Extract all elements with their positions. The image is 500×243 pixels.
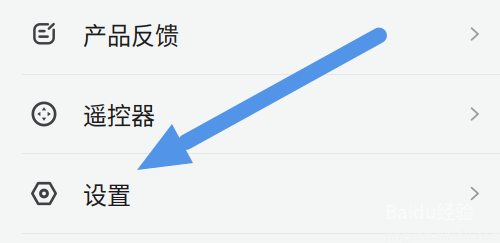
staticText: 产品反馈 [83,17,179,51]
button[interactable]: 产品反馈 [0,0,500,71]
button[interactable]: 遥控器 [0,75,500,153]
staticText: Baidu经验 [385,197,474,224]
button[interactable]: 设置 [0,154,500,233]
staticText: 遥控器 [83,97,155,131]
staticText: 设置 [83,176,131,211]
